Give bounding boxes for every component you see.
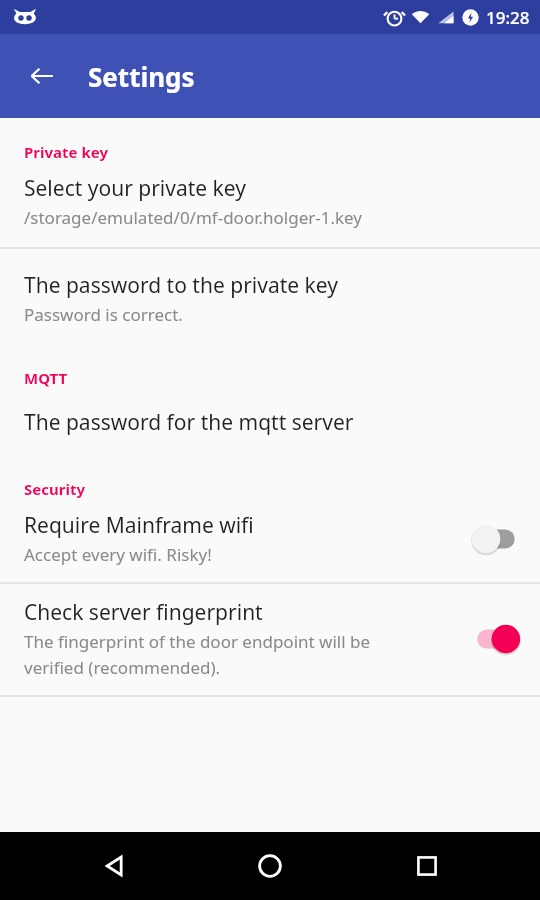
staticText: MQTT: [24, 368, 68, 388]
button[interactable]: Check server fingerprint: [0, 584, 540, 695]
staticText: The password for the mqtt server: [24, 408, 354, 437]
button[interactable]: Recent apps: [397, 836, 457, 896]
staticText: Password is correct.: [24, 303, 183, 326]
button[interactable]: Select your private key: [0, 162, 540, 247]
staticText: Select your private key: [24, 174, 246, 203]
staticText: Private key: [24, 142, 108, 162]
button[interactable]: Toggle off: [468, 519, 524, 559]
staticText: Security: [24, 479, 85, 499]
staticText: Settings: [88, 59, 195, 94]
staticText: Accept every wifi. Risky!: [24, 543, 212, 566]
staticText: Require Mainframe wifi: [24, 511, 254, 540]
staticText: The password to the private key: [24, 271, 338, 300]
button[interactable]: The password for the mqtt server: [0, 388, 540, 459]
button[interactable]: Home: [240, 836, 300, 896]
button[interactable]: Require Mainframe wifi: [0, 499, 540, 582]
staticText: 19:28: [486, 6, 530, 29]
button[interactable]: Toggle on: [468, 619, 524, 659]
button[interactable]: The password to the private key: [0, 249, 540, 346]
staticText: The fingerprint of the door endpoint wil…: [24, 630, 371, 679]
button[interactable]: Back: [14, 48, 70, 104]
staticText: Check server fingerprint: [24, 598, 263, 627]
button[interactable]: Back: [85, 836, 145, 896]
staticText: /storage/emulated/0/mf-door.holger-1.key: [24, 206, 363, 229]
